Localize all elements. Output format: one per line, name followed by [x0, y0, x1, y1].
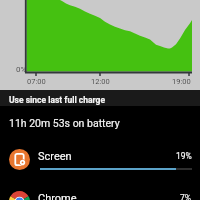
other: Screen: [9, 149, 30, 170]
staticText: 11h 20m 53s on battery: [9, 117, 120, 129]
button[interactable]: Use since last full charge: [0, 90, 200, 106]
staticText: Use since last full charge: [9, 95, 105, 105]
other: Chrome: [9, 191, 30, 200]
staticText: 12:00: [91, 77, 110, 86]
staticText: 7%: [180, 193, 192, 200]
button[interactable]: Screen: [0, 139, 200, 181]
staticText: 19%: [176, 151, 192, 161]
staticText: Screen: [38, 150, 72, 163]
staticText: Chrome: [38, 192, 77, 200]
button[interactable]: 11h 20m 53s on battery: [0, 106, 200, 139]
button[interactable]: Chrome: [0, 181, 200, 200]
staticText: 19:00: [172, 77, 191, 86]
staticText: 07:00: [27, 77, 46, 86]
staticText: 0%: [16, 65, 27, 74]
